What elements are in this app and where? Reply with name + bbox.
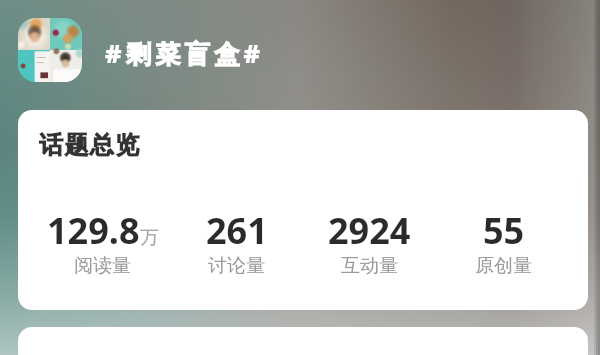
button[interactable]: 2924 (303, 206, 436, 279)
button[interactable]: 129.8 (36, 206, 169, 279)
button[interactable]: 话题总览 (18, 110, 588, 310)
staticText: 讨论量 (208, 254, 265, 278)
staticText: 阅读量 (74, 254, 131, 278)
staticText: 互动量 (341, 254, 398, 278)
staticText: 129.8 (47, 206, 140, 255)
staticText: 万 (140, 226, 159, 250)
staticText: #剩菜盲盒# (105, 36, 265, 70)
staticText: 2924 (328, 206, 411, 255)
staticText: 55 (483, 206, 525, 255)
staticText: 原创量 (475, 254, 532, 278)
button[interactable]: 261 (170, 206, 303, 279)
staticText: 261 (206, 206, 268, 255)
staticText: 话题总览 (39, 130, 141, 160)
button[interactable]: 55 (437, 206, 570, 279)
button[interactable]: Topic cover (18, 18, 82, 82)
